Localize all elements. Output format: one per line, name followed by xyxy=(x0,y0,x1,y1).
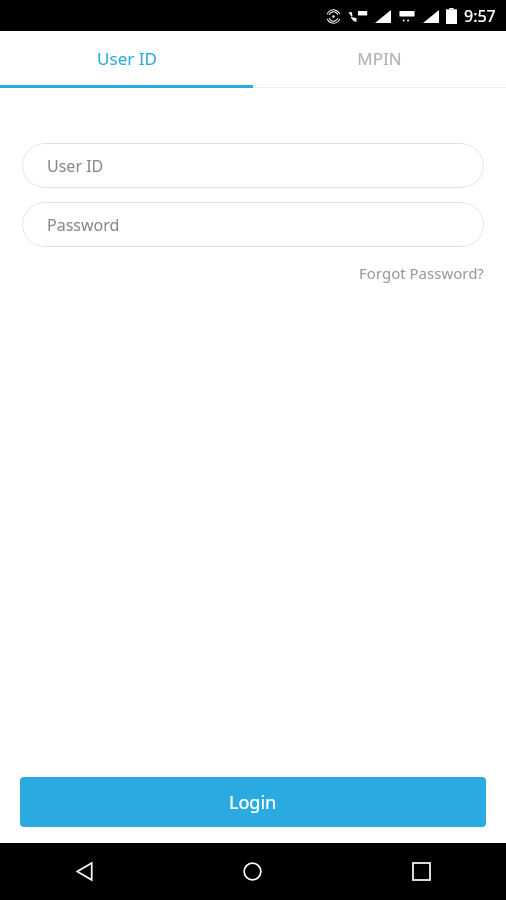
staticText: Password xyxy=(47,214,120,236)
button[interactable]: Forgot Password? xyxy=(357,261,486,285)
button[interactable]: Login xyxy=(20,777,486,827)
button[interactable]: User ID xyxy=(0,31,253,85)
button[interactable]: Back xyxy=(0,843,168,900)
button[interactable]: MPIN xyxy=(253,31,506,85)
staticText: Login xyxy=(229,790,277,815)
staticText: Forgot Password? xyxy=(359,263,484,283)
staticText: User ID xyxy=(47,155,104,177)
button[interactable]: Password xyxy=(22,202,484,247)
staticText: 9:57 xyxy=(464,5,496,27)
button[interactable]: User ID xyxy=(22,143,484,188)
staticText: User ID xyxy=(97,47,157,70)
button[interactable]: Recent apps xyxy=(337,843,506,900)
button[interactable]: Home xyxy=(168,843,337,900)
staticText: MPIN xyxy=(357,47,402,70)
